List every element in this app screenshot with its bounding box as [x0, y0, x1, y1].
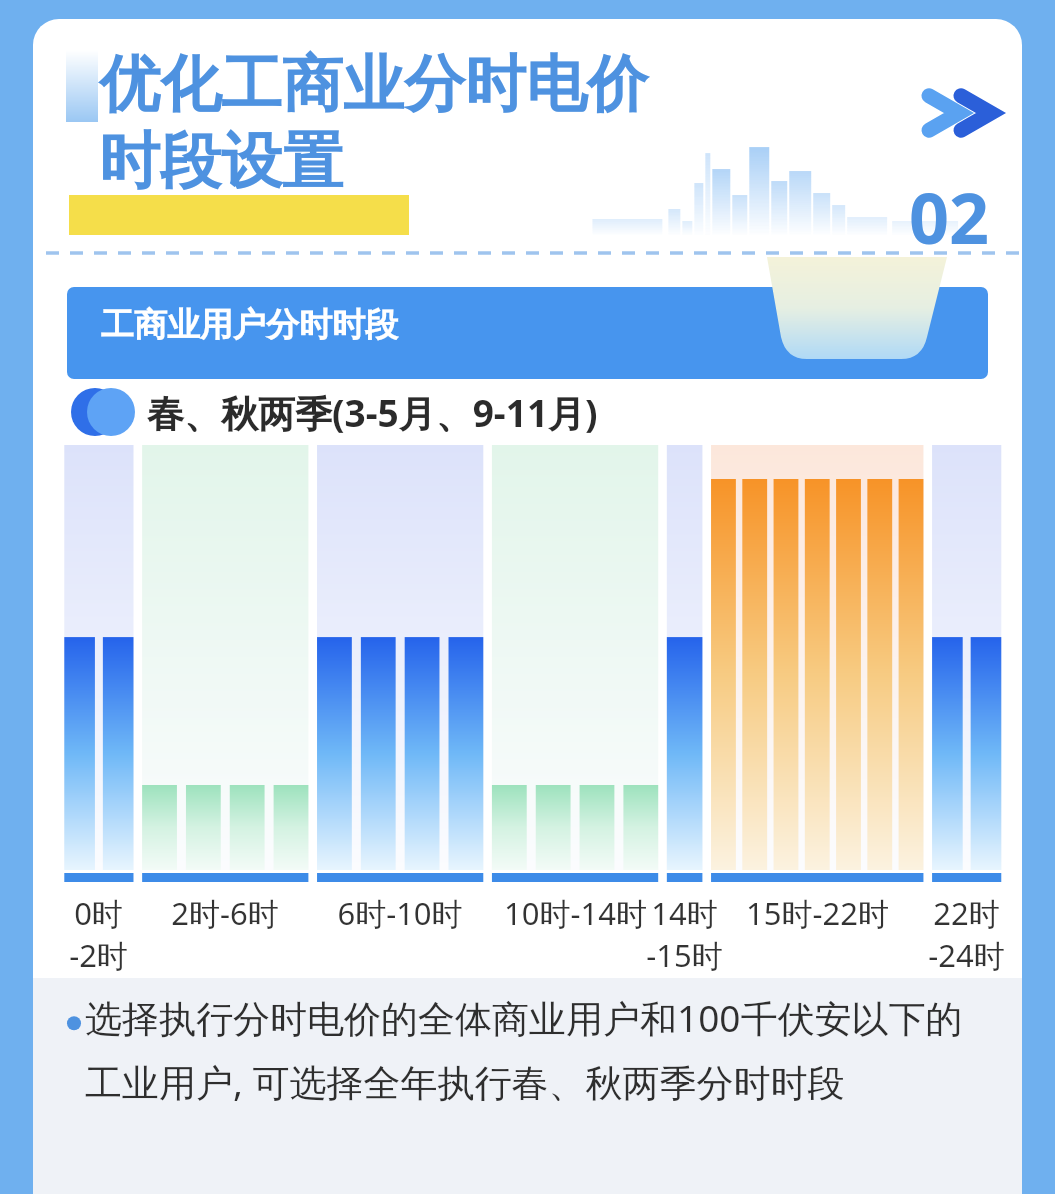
staticText: 14时	[651, 892, 718, 934]
button[interactable]: Next section	[913, 77, 1009, 149]
staticText: -24时	[928, 934, 1005, 976]
staticText: 02	[909, 169, 990, 264]
staticText: 时段设置	[99, 123, 343, 200]
button[interactable]	[67, 287, 988, 379]
staticText: 优化工商业分时电价	[99, 46, 648, 123]
staticText: 0时	[74, 892, 123, 934]
staticText: 22时	[933, 892, 1000, 934]
staticText: 工商业用户分时时段	[101, 304, 398, 346]
staticText: 15时-22时	[746, 892, 889, 934]
staticText: 2时-6时	[171, 892, 279, 934]
staticText: 10时-14时	[504, 892, 647, 934]
staticText: -15时	[646, 934, 723, 976]
staticText: 选择执行分时电价的全体商业用户和100千伏安以下的工业用户, 可选择全年执行春、…	[85, 992, 994, 1107]
staticText: 春、秋两季(3-5月、9-11月)	[147, 387, 598, 438]
button[interactable]: 春、秋两季(3-5月、9-11月)	[71, 379, 984, 445]
staticText: -2时	[69, 934, 128, 976]
staticText: 6时-10时	[337, 892, 463, 934]
